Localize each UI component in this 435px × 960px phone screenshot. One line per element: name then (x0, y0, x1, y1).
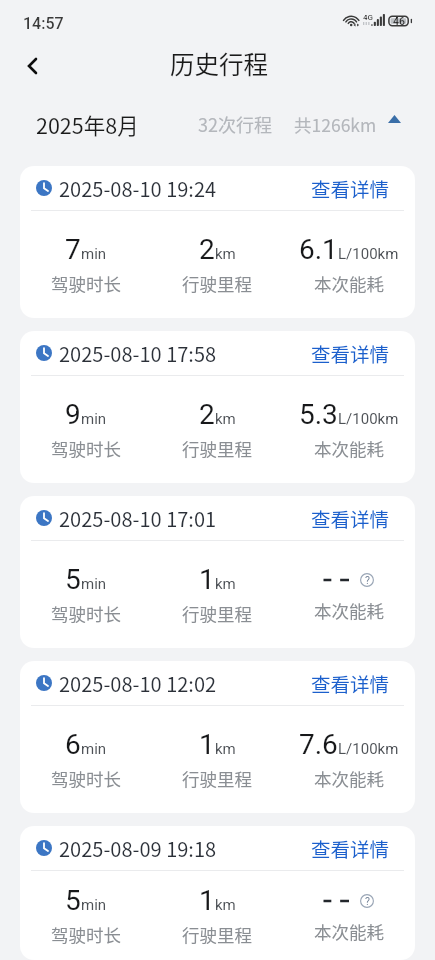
button[interactable]: Back (13, 47, 51, 85)
button[interactable]: 2025-08-10 19:24 (20, 166, 415, 318)
staticText: 2 (199, 233, 215, 266)
staticText: 本次能耗 (314, 919, 384, 944)
staticText: ? (365, 574, 370, 586)
staticText: 本次能耗 (314, 598, 384, 623)
staticText: 2025年8月 (36, 109, 139, 140)
staticText: 2 (199, 398, 215, 431)
staticText: L/100km (338, 245, 399, 263)
staticText: 1 (199, 563, 215, 596)
staticText: 5.3 (299, 398, 338, 431)
staticText: 2025-08-10 19:24 (59, 174, 217, 203)
staticText: ? (365, 895, 370, 907)
staticText: km (215, 896, 236, 914)
staticText: 查看详情 (311, 834, 390, 862)
button[interactable]: Info (359, 893, 375, 909)
staticText: 行驶里程 (182, 922, 252, 947)
staticText: 行驶里程 (182, 766, 252, 791)
staticText: 行驶里程 (182, 271, 252, 296)
staticText: 7.6 (299, 728, 338, 761)
staticText: 2025-08-10 12:02 (59, 669, 217, 698)
staticText: min (81, 410, 107, 428)
staticText: 46 (393, 15, 405, 27)
staticText: km (215, 575, 236, 593)
button[interactable]: 2025-08-10 17:01 (20, 496, 415, 648)
staticText: 2025-08-10 17:01 (59, 504, 217, 533)
staticText: km (215, 740, 236, 758)
staticText: 6.1 (299, 233, 338, 266)
staticText: 14:57 (23, 14, 64, 33)
staticText: 4G (363, 13, 373, 22)
staticText: 5 (65, 884, 81, 917)
staticText: 2025-08-10 17:58 (59, 339, 217, 368)
staticText: 历史行程 (170, 46, 268, 81)
staticText: 本次能耗 (314, 766, 384, 791)
button[interactable]: 2025-08-10 17:58 (20, 331, 415, 483)
staticText: 行驶里程 (182, 436, 252, 461)
button[interactable]: Info (359, 572, 375, 588)
staticText: 查看详情 (311, 339, 390, 367)
staticText: 行驶里程 (182, 601, 252, 626)
button[interactable]: 32次行程 (198, 111, 401, 137)
staticText: 查看详情 (311, 504, 390, 532)
staticText: 驾驶时长 (51, 922, 121, 947)
staticText: km (215, 245, 236, 263)
staticText: min (81, 245, 107, 263)
staticText: 驾驶时长 (51, 436, 121, 461)
staticText: L/100km (338, 740, 399, 758)
staticText: 查看详情 (311, 669, 390, 697)
staticText: 7 (65, 233, 81, 266)
button[interactable]: 2025-08-09 19:18 (20, 826, 415, 960)
staticText: 本次能耗 (314, 436, 384, 461)
staticText: 驾驶时长 (51, 271, 121, 296)
staticText: 9 (65, 398, 81, 431)
staticText: 32次行程 (198, 111, 272, 137)
staticText: min (81, 740, 107, 758)
staticText: 驾驶时长 (51, 601, 121, 626)
button[interactable]: 2025-08-10 12:02 (20, 661, 415, 813)
staticText: 查看详情 (311, 174, 390, 202)
staticText: 5 (65, 563, 81, 596)
staticText: 共1266km (294, 112, 377, 137)
staticText: 1 (199, 728, 215, 761)
staticText: 本次能耗 (314, 271, 384, 296)
staticText: min (81, 896, 107, 914)
staticText: L/100km (338, 410, 399, 428)
staticText: min (81, 575, 107, 593)
staticText: 驾驶时长 (51, 766, 121, 791)
staticText: 6 (65, 728, 81, 761)
staticText: 1 (199, 884, 215, 917)
staticText: 2025-08-09 19:18 (59, 834, 217, 863)
staticText: km (215, 410, 236, 428)
